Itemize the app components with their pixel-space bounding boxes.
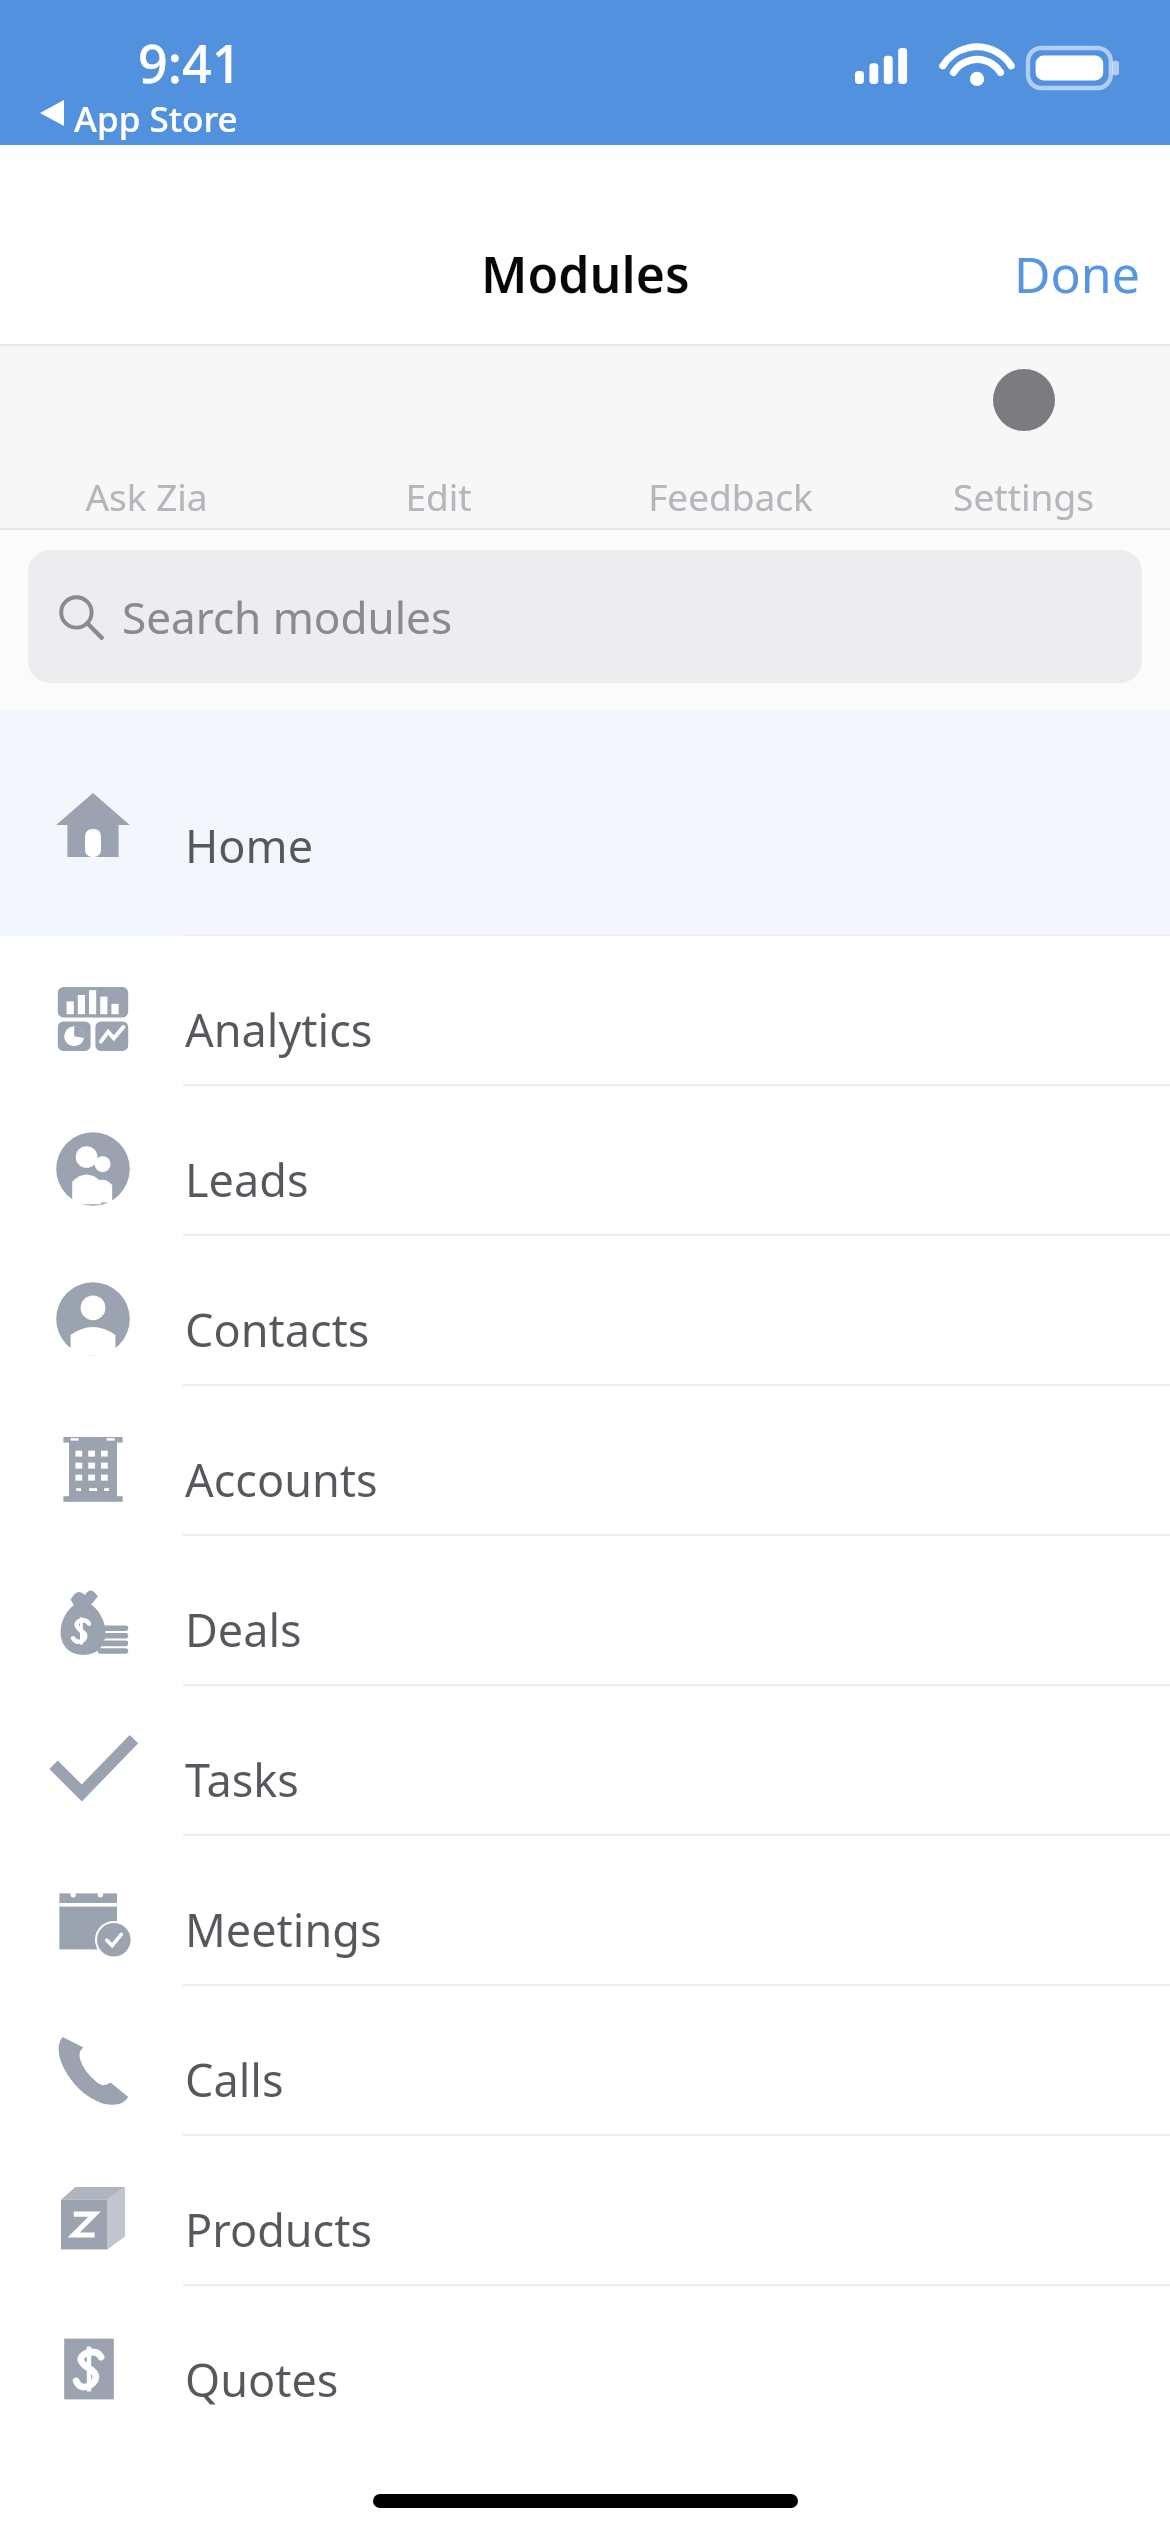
- staticText: Accounts: [185, 1449, 378, 1510]
- button[interactable]: Settings: [877, 344, 1170, 530]
- button[interactable]: Home: [0, 710, 1170, 936]
- button[interactable]: Quotes: [0, 2286, 1170, 2436]
- button[interactable]: Feedback: [584, 344, 877, 530]
- staticText: Analytics: [185, 999, 373, 1060]
- staticText: Products: [185, 2199, 373, 2260]
- staticText: App Store: [74, 95, 238, 143]
- staticText: Done: [1014, 240, 1140, 308]
- staticText: Edit: [405, 471, 472, 521]
- staticText: Deals: [185, 1599, 302, 1660]
- staticText: Settings: [953, 471, 1094, 521]
- button[interactable]: Contacts: [0, 1236, 1170, 1386]
- button[interactable]: Analytics: [0, 936, 1170, 1086]
- button[interactable]: Accounts: [0, 1386, 1170, 1536]
- button[interactable]: Leads: [0, 1086, 1170, 1236]
- staticText: Home: [185, 815, 314, 876]
- staticText: Quotes: [185, 2349, 339, 2410]
- button[interactable]: Edit: [292, 344, 584, 530]
- button[interactable]: Tasks: [0, 1686, 1170, 1836]
- staticText: Modules: [481, 240, 690, 308]
- staticText: Tasks: [185, 1749, 299, 1810]
- button[interactable]: Search modules: [28, 550, 1142, 683]
- staticText: Calls: [185, 2049, 284, 2110]
- staticText: Meetings: [185, 1899, 382, 1960]
- button[interactable]: Ask Zia: [0, 344, 292, 530]
- staticText: 9:41: [138, 27, 242, 98]
- button[interactable]: Done: [984, 226, 1170, 322]
- staticText: Ask Zia: [85, 471, 208, 521]
- staticText: Feedback: [648, 471, 813, 521]
- button[interactable]: Meetings: [0, 1836, 1170, 1986]
- staticText: Search modules: [122, 587, 452, 647]
- staticText: Leads: [185, 1149, 309, 1210]
- button[interactable]: Calls: [0, 1986, 1170, 2136]
- staticText: Contacts: [185, 1299, 370, 1360]
- button[interactable]: Products: [0, 2136, 1170, 2286]
- button[interactable]: Deals: [0, 1536, 1170, 1686]
